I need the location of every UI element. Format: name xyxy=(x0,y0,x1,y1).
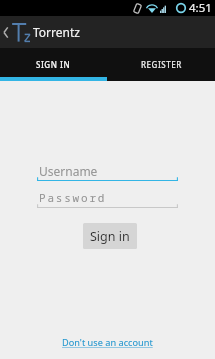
staticText: REGISTER xyxy=(141,59,182,70)
button[interactable]: Sign in xyxy=(83,223,137,249)
staticText: SIGN IN xyxy=(36,59,71,70)
staticText: Sign in xyxy=(90,228,130,245)
button[interactable]: Username xyxy=(37,161,178,181)
staticText: Password xyxy=(39,190,107,205)
button[interactable]: Password xyxy=(37,188,178,208)
button[interactable]: Don't use an account xyxy=(58,334,157,351)
button[interactable]: SIGN IN xyxy=(0,48,107,81)
staticText: Torrentz xyxy=(33,24,80,40)
button[interactable]: Back xyxy=(0,16,10,48)
staticText: 4:51 xyxy=(189,0,212,16)
staticText: Don't use an account xyxy=(62,336,153,349)
staticText: Username xyxy=(39,163,98,179)
button[interactable]: REGISTER xyxy=(107,48,215,81)
